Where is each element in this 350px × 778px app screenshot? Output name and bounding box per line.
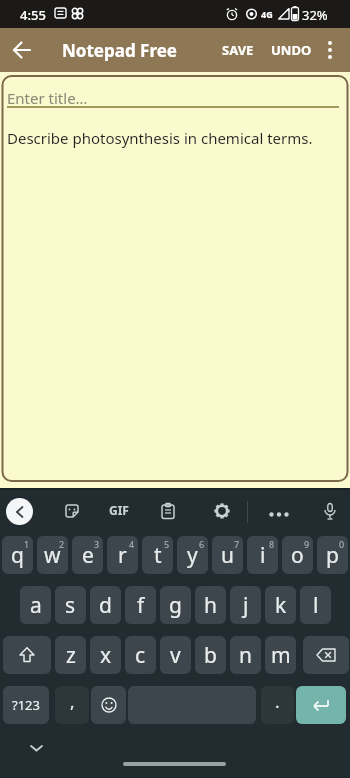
button[interactable] [296, 686, 346, 724]
staticText: t [154, 541, 162, 570]
button[interactable]: h [195, 586, 226, 624]
staticText: 9 [304, 538, 310, 550]
staticText: a [30, 591, 42, 620]
button[interactable]: r [107, 536, 138, 574]
button[interactable]: x [90, 636, 121, 674]
button[interactable]: l [300, 586, 331, 624]
button[interactable] [91, 686, 126, 724]
button[interactable]: v [160, 636, 191, 674]
button[interactable]: Describe photosynthesis in chemical term… [7, 128, 313, 148]
staticText: 4 [129, 538, 135, 550]
staticText: 7 [234, 538, 240, 550]
staticText: s [65, 591, 76, 620]
button[interactable]: SAVE [214, 36, 262, 64]
button[interactable] [303, 636, 349, 674]
staticText: j [243, 591, 249, 620]
staticText: o [291, 541, 304, 570]
button[interactable]: s [55, 586, 86, 624]
button[interactable]: c [125, 636, 156, 674]
button[interactable]: ?123 [3, 686, 49, 724]
staticText: , [70, 690, 75, 713]
button[interactable]: Enter title… [7, 88, 88, 108]
staticText: 32% [302, 6, 328, 24]
staticText: 2 [59, 538, 65, 550]
button[interactable]: GIF [109, 502, 129, 518]
staticText: m [271, 641, 291, 670]
button[interactable]: e [72, 536, 103, 574]
staticText: b [204, 641, 217, 670]
button[interactable] [262, 497, 296, 531]
staticText: e [82, 541, 94, 570]
button[interactable]: m [265, 636, 296, 674]
button[interactable] [6, 498, 33, 525]
staticText: 1 [24, 538, 30, 550]
button[interactable]: t [142, 536, 173, 574]
staticText: 3 [94, 538, 100, 550]
button[interactable] [3, 636, 51, 674]
staticText: d [99, 591, 112, 620]
staticText: 4:55 [20, 6, 46, 24]
button[interactable]: u [212, 536, 243, 574]
button[interactable] [4, 32, 40, 68]
button[interactable]: p [317, 536, 348, 574]
button[interactable]: z [55, 636, 86, 674]
button[interactable]: y [177, 536, 208, 574]
staticText: 6 [199, 538, 205, 550]
staticText: i [260, 541, 266, 570]
button[interactable]: n [230, 636, 261, 674]
button[interactable] [312, 32, 348, 68]
staticText: 8 [269, 538, 275, 550]
staticText: 5 [164, 538, 170, 550]
button[interactable]: k [265, 586, 296, 624]
staticText: l [313, 591, 319, 620]
button[interactable]: w [37, 536, 68, 574]
button[interactable] [154, 497, 182, 525]
staticText: ?123 [12, 696, 40, 714]
button[interactable]: UNDO [263, 36, 320, 64]
button[interactable] [208, 497, 236, 525]
staticText: 0 [339, 538, 345, 550]
button[interactable]: g [160, 586, 191, 624]
staticText: h [204, 591, 217, 620]
staticText: UNDO [271, 41, 312, 59]
staticText: c [135, 641, 146, 670]
button[interactable] [316, 497, 344, 525]
button[interactable]: j [230, 586, 261, 624]
staticText: y [187, 541, 198, 570]
staticText: v [170, 641, 181, 670]
staticText: n [239, 641, 252, 670]
staticText: SAVE [222, 41, 254, 59]
staticText: . [275, 690, 280, 713]
staticText: k [275, 591, 287, 620]
staticText: w [44, 541, 61, 570]
staticText: q [11, 541, 24, 570]
staticText: z [66, 641, 76, 670]
button[interactable]: f [125, 586, 156, 624]
staticText: x [100, 641, 112, 670]
button[interactable]: , [55, 686, 89, 724]
button[interactable]: . [261, 686, 294, 724]
button[interactable]: o [282, 536, 313, 574]
button[interactable]: i [247, 536, 278, 574]
staticText: u [221, 541, 234, 570]
staticText: r [118, 541, 127, 570]
button[interactable] [123, 762, 226, 766]
staticText: g [169, 591, 182, 620]
staticText: Notepad Free [62, 39, 177, 62]
staticText: 4G [261, 8, 273, 20]
staticText: f [137, 591, 145, 620]
button[interactable] [58, 497, 86, 525]
button[interactable]: b [195, 636, 226, 674]
button[interactable]: d [90, 586, 121, 624]
button[interactable]: q [2, 536, 33, 574]
staticText: p [326, 541, 339, 570]
button[interactable]: a [20, 586, 51, 624]
